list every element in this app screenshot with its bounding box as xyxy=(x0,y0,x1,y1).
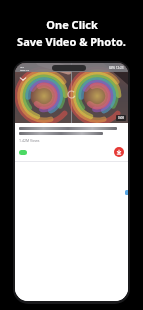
staticText: 84% 12:23 xyxy=(109,66,124,70)
button[interactable]: Side tab xyxy=(125,190,128,195)
staticText: 1.42M Views xyxy=(19,138,40,143)
staticText: AM xyxy=(20,65,24,68)
button[interactable]: Download xyxy=(114,147,124,157)
button[interactable]: Collapse xyxy=(18,74,28,84)
staticText: Mon 18 xyxy=(20,68,29,71)
staticText: One Click xyxy=(46,17,98,32)
button[interactable]: Status xyxy=(19,150,27,155)
staticText: Save Video & Photo. xyxy=(17,34,126,49)
staticText: 0:08 xyxy=(118,116,124,120)
